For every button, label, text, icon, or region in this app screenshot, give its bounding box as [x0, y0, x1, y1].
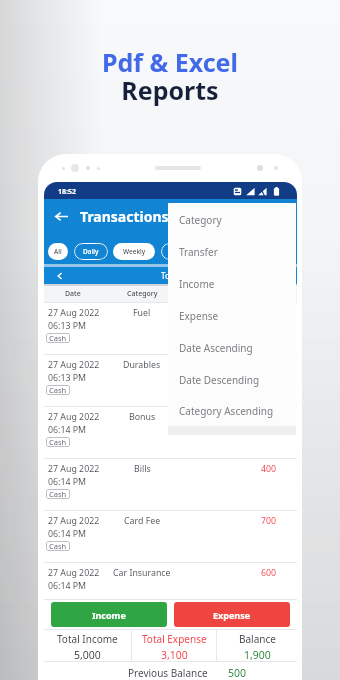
button[interactable]: Date Ascending	[168, 332, 296, 364]
staticText: Previous Balance	[128, 666, 208, 680]
staticText: 400	[261, 463, 277, 475]
staticText: Monthly	[171, 247, 197, 256]
staticText: Total Income	[57, 632, 118, 646]
staticText: Weekly	[123, 247, 146, 256]
button[interactable]: 27 Aug 2022	[44, 459, 297, 510]
button[interactable]: Category Ascending	[168, 396, 296, 426]
staticText: Category	[179, 213, 222, 227]
staticText: 27 Aug 2022	[48, 359, 100, 371]
staticText: Cash	[49, 489, 67, 499]
staticText: 27 Aug 2022	[48, 463, 100, 475]
staticText: Bonus	[129, 411, 156, 423]
button[interactable]: 27 Aug 2022	[44, 407, 297, 458]
staticText: 500	[228, 666, 247, 680]
button[interactable]: Weekly	[113, 243, 155, 260]
staticText: Expense	[213, 609, 251, 621]
button[interactable]: 27 Aug 2022	[44, 355, 297, 406]
button[interactable]: Expense	[168, 300, 296, 332]
staticText: Pdf & Excel	[102, 45, 238, 79]
staticText: Balance	[239, 632, 276, 646]
staticText: 06:14 PM	[48, 528, 87, 540]
staticText: 06:14 PM	[48, 424, 87, 436]
staticText: Date	[65, 289, 81, 299]
button[interactable]: Category	[168, 204, 296, 236]
button[interactable]: 27 Aug 2022	[44, 563, 297, 599]
staticText: Total Expense	[142, 632, 207, 646]
staticText: 5,000	[74, 648, 101, 662]
staticText: 27 Aug 2022	[48, 307, 100, 319]
staticText: Fuel	[133, 307, 151, 319]
staticText: Card Fee	[124, 515, 161, 527]
staticText: 1,900	[244, 648, 271, 662]
staticText: Category Ascending	[179, 404, 274, 418]
button[interactable]: Income	[51, 602, 167, 627]
staticText: 06:14 PM	[48, 580, 87, 592]
staticText: Total	[161, 270, 180, 281]
staticText: Bills	[134, 463, 151, 475]
staticText: 06:13 PM	[48, 320, 87, 332]
staticText: Cash	[49, 385, 67, 395]
button[interactable]: 27 Aug 2022	[44, 511, 297, 562]
button[interactable]: Monthly	[161, 243, 207, 260]
staticText: Transactions	[80, 207, 169, 226]
button[interactable]: Previous	[54, 270, 66, 282]
staticText: 27 Aug 2022	[48, 567, 100, 579]
staticText: Date Descending	[179, 373, 260, 387]
staticText: Income	[92, 609, 126, 621]
button[interactable]: All	[48, 243, 68, 260]
staticText: Cash	[49, 541, 67, 551]
button[interactable]: 27 Aug 2022	[44, 303, 297, 354]
staticText: Category	[127, 289, 158, 299]
staticText: Daily	[83, 247, 99, 256]
staticText: 600	[261, 567, 277, 579]
staticText: Transfer	[179, 245, 218, 259]
staticText: Cash	[49, 333, 67, 343]
staticText: 18:52	[58, 187, 76, 197]
button[interactable]: Daily	[74, 243, 108, 260]
staticText: Durables	[123, 359, 161, 371]
staticText: 06:13 PM	[48, 372, 87, 384]
staticText: 700	[261, 515, 277, 527]
button[interactable]: Income	[168, 268, 296, 300]
button[interactable]: Back	[52, 207, 70, 225]
staticText: 27 Aug 2022	[48, 515, 100, 527]
staticText: Cash	[49, 437, 67, 447]
staticText: All	[54, 247, 62, 256]
staticText: Reports	[121, 73, 219, 107]
staticText: Expense	[179, 309, 219, 323]
button[interactable]: Expense	[174, 602, 290, 627]
staticText: Date Ascending	[179, 341, 253, 355]
staticText: 3,100	[161, 648, 188, 662]
staticText: Car Insurance	[113, 567, 171, 579]
staticText: Income	[179, 277, 215, 291]
button[interactable]: Date Descending	[168, 364, 296, 396]
button[interactable]: Transfer	[168, 236, 296, 268]
staticText: 06:14 PM	[48, 476, 87, 488]
staticText: 27 Aug 2022	[48, 411, 100, 423]
